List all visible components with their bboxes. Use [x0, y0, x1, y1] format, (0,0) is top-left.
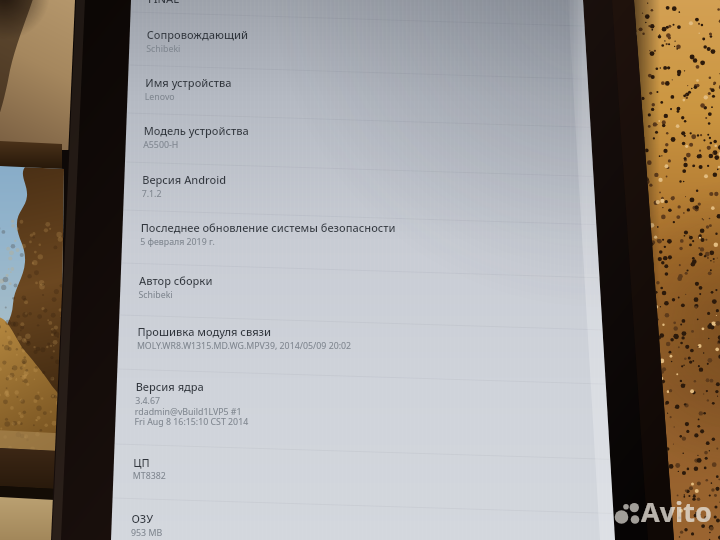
button[interactable]: Tablet About device screen photo [0, 0, 720, 540]
